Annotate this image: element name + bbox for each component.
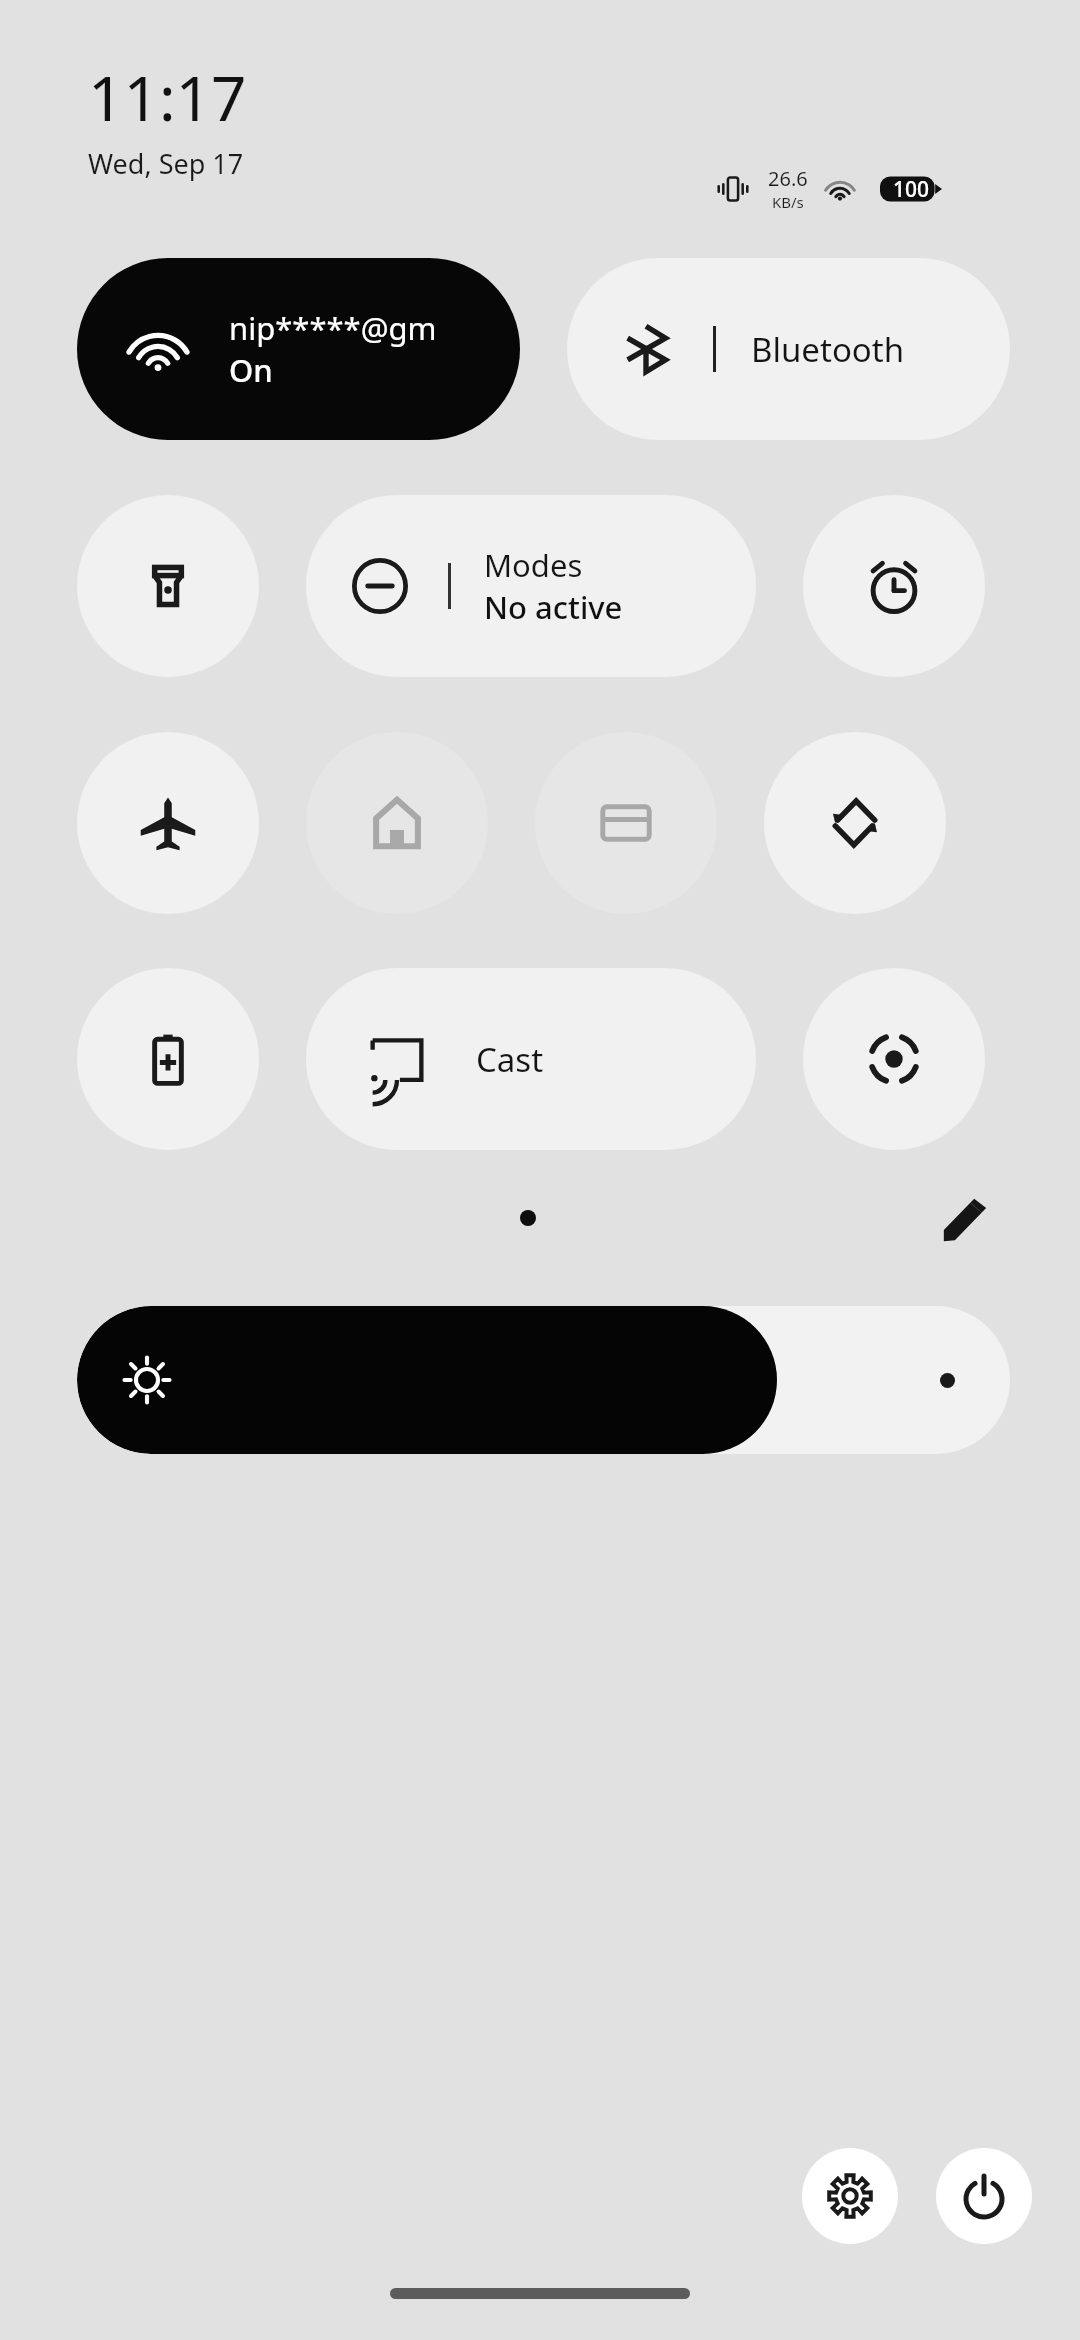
button[interactable]: Bluetooth [567,258,1010,440]
button[interactable]: Edit tiles [930,1185,1000,1255]
button[interactable]: Screen record [803,968,985,1150]
staticText: No active [484,586,623,628]
button[interactable]: Cast [306,968,756,1150]
staticText: Wed, Sep 17 [88,145,244,182]
staticText: 100 [893,175,930,204]
button[interactable]: Modes [306,495,756,677]
button[interactable]: Flashlight [77,495,259,677]
button[interactable]: Battery saver [77,968,259,1150]
button[interactable]: Wallet [535,732,717,914]
button[interactable]: Power [936,2148,1032,2244]
staticText: Cast [476,1037,544,1082]
button[interactable]: Alarm [803,495,985,677]
button[interactable]: Auto rotate [764,732,946,914]
staticText: nip*****@gm [229,307,437,349]
staticText: Modes [484,544,583,586]
button[interactable]: Settings [802,2148,898,2244]
button[interactable]: Page 1 [510,1200,546,1236]
button[interactable]: Home [306,732,488,914]
staticText: On [229,349,273,391]
staticText: 26.6 [768,165,808,192]
staticText: 11:17 [88,55,247,139]
staticText: Bluetooth [751,327,905,372]
staticText: KB/s [772,192,804,212]
button[interactable]: nip*****@gm [77,258,520,440]
button[interactable]: Airplane mode [77,732,259,914]
button[interactable]: Brightness [77,1306,1010,1454]
